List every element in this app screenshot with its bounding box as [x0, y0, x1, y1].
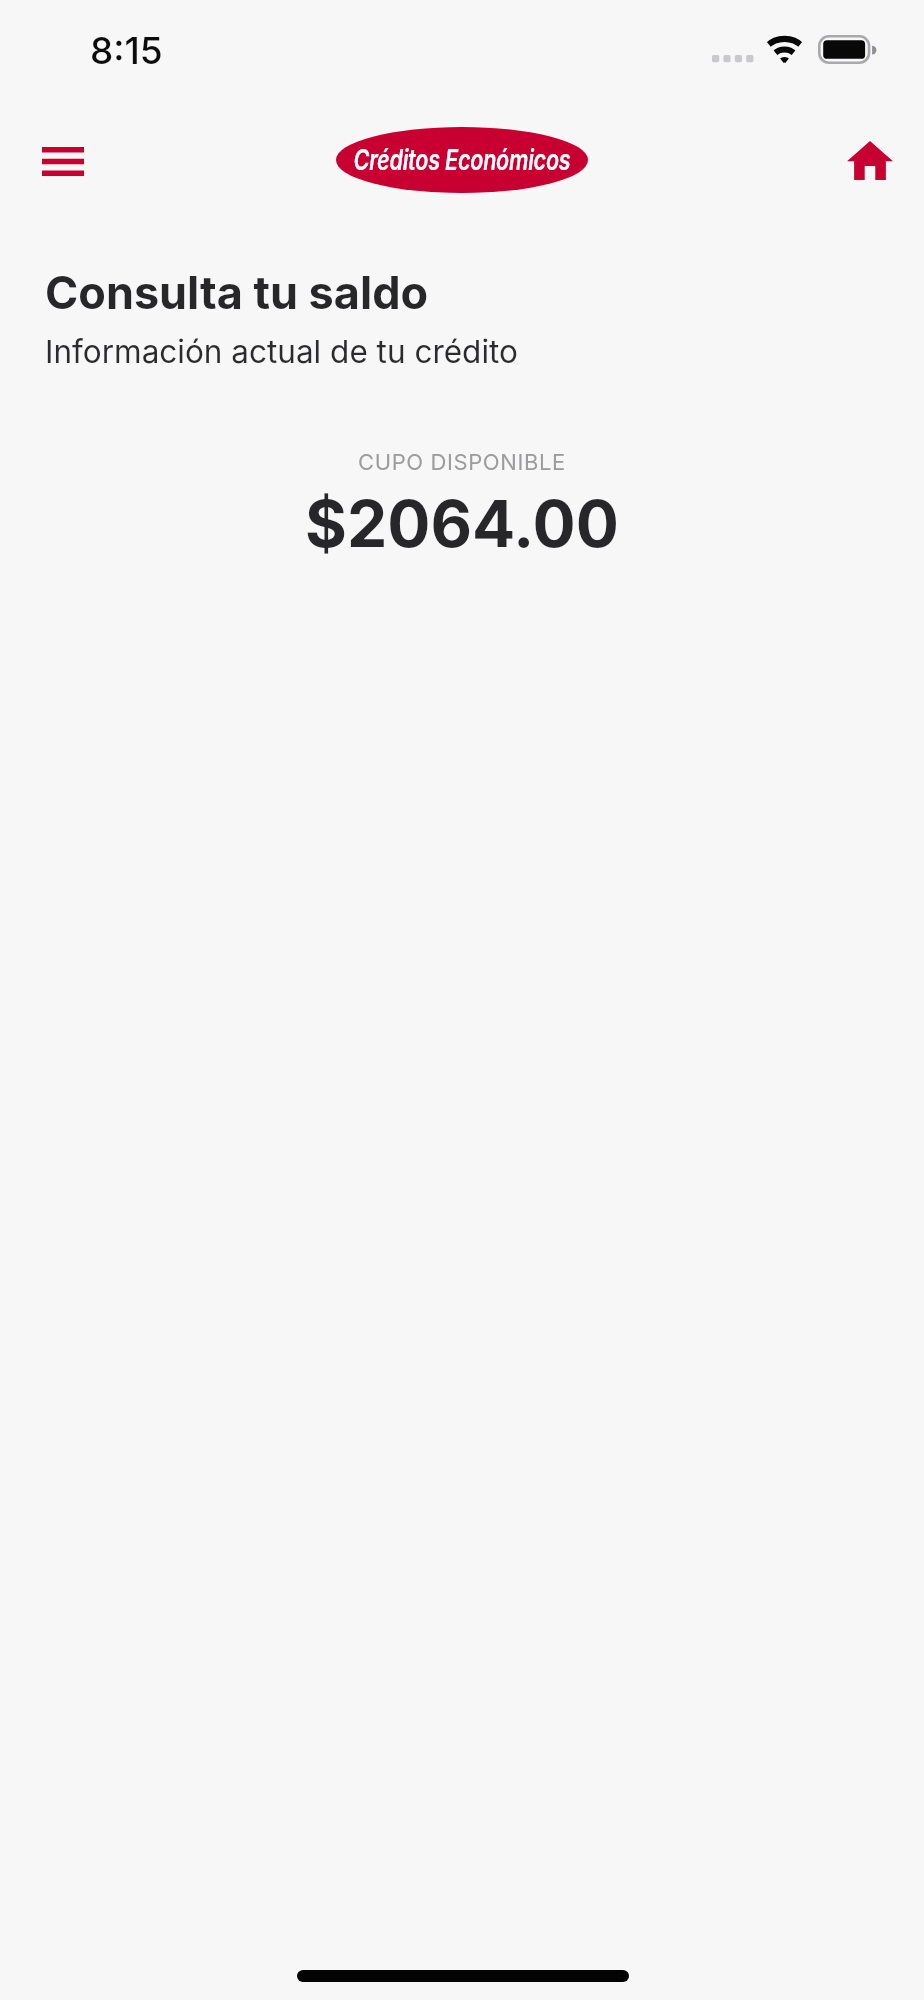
staticText: Créditos Económicos [353, 143, 570, 177]
staticText: Información actual de tu crédito [45, 332, 518, 370]
button[interactable]: Menu [18, 136, 108, 186]
staticText: CUPO DISPONIBLE [358, 449, 566, 476]
staticText: Consulta tu saldo [45, 265, 429, 319]
button[interactable]: Créditos Económicos [336, 127, 588, 193]
staticText: 8:15 [90, 28, 163, 73]
staticText: $2064.00 [305, 485, 619, 562]
button[interactable]: Home [826, 131, 914, 189]
